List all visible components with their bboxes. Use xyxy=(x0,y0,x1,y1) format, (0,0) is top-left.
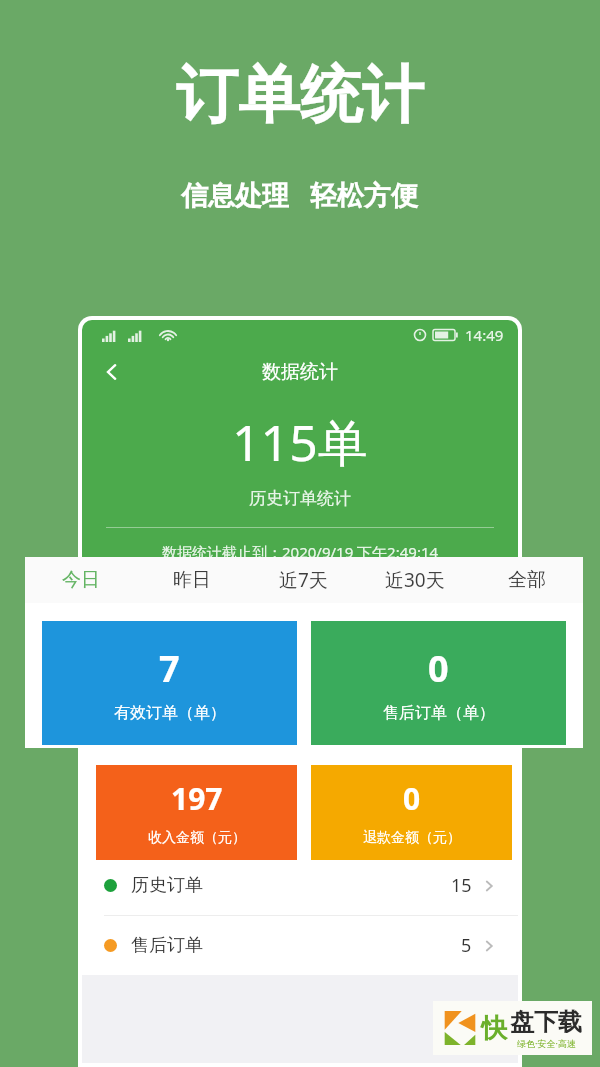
staticText: 近30天 xyxy=(385,567,445,593)
button[interactable]: 历史订单 xyxy=(82,856,518,915)
button[interactable]: 昨日 xyxy=(136,557,247,603)
staticText: 订单统计 xyxy=(176,56,424,134)
staticText: 7 xyxy=(159,644,180,693)
staticText: 全部 xyxy=(508,568,546,592)
staticText: 售后订单 xyxy=(131,934,203,957)
button[interactable]: 0 xyxy=(311,765,512,860)
staticText: 14:49 xyxy=(465,325,504,345)
staticText: 历史订单统计 xyxy=(249,488,351,509)
staticText: 退款金额（元） xyxy=(363,829,461,847)
button[interactable]: 7 xyxy=(42,621,297,745)
staticText: 15 xyxy=(451,873,472,898)
staticText: 数据统计 xyxy=(262,360,338,384)
staticText: 绿色·安全·高速 xyxy=(517,1037,576,1049)
button[interactable]: 全部 xyxy=(471,557,583,603)
staticText: 盘下载 xyxy=(510,1007,582,1037)
staticText: 快 xyxy=(481,1012,507,1045)
staticText: 0 xyxy=(428,644,449,693)
staticText: 收入金额（元） xyxy=(148,829,246,847)
staticText: 昨日 xyxy=(173,568,211,592)
staticText: 有效订单（单） xyxy=(114,703,226,723)
staticText: 0 xyxy=(403,778,421,819)
staticText: 信息处理 轻松方便 xyxy=(181,176,419,213)
staticText: 115单 xyxy=(232,408,368,476)
staticText: 售后订单（单） xyxy=(383,703,495,723)
button[interactable]: 近7天 xyxy=(247,557,359,603)
staticText: 数据统计截止到：2020/9/19 下午2:49:14 xyxy=(162,542,439,562)
staticText: 5 xyxy=(461,933,472,958)
staticText: 197 xyxy=(171,778,223,819)
button[interactable]: Back xyxy=(96,356,128,388)
staticText: 历史订单 xyxy=(131,874,203,897)
button[interactable]: 近30天 xyxy=(359,557,471,603)
staticText: 今日 xyxy=(62,568,100,592)
staticText: 近7天 xyxy=(279,567,328,593)
button[interactable]: 今日 xyxy=(25,557,136,603)
button[interactable]: 售后订单 xyxy=(82,916,518,975)
button[interactable]: 197 xyxy=(96,765,297,860)
button[interactable]: 0 xyxy=(311,621,566,745)
